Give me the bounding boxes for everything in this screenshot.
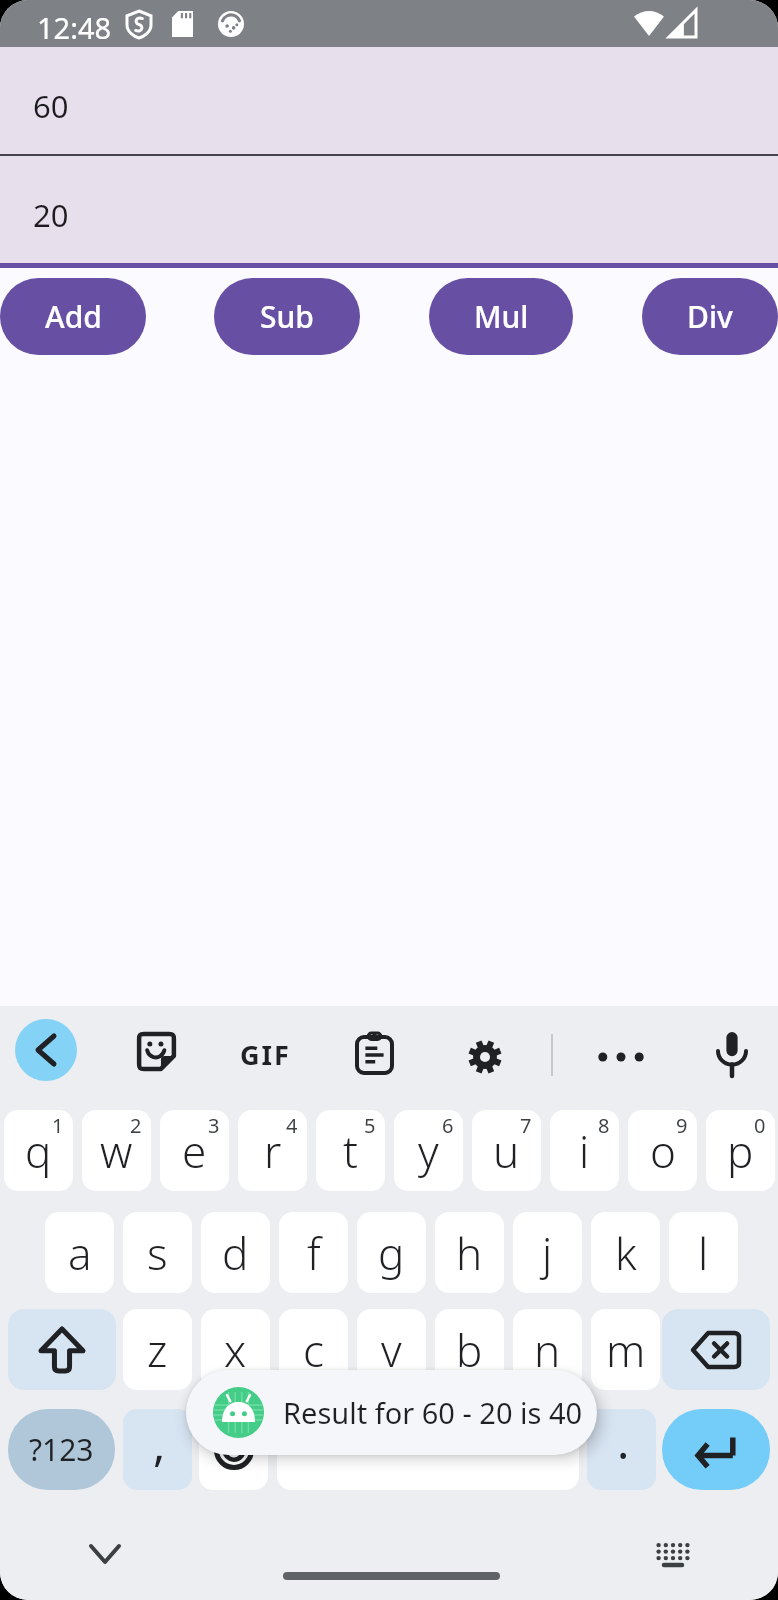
button[interactable]: g xyxy=(357,1212,426,1293)
button[interactable]: q xyxy=(4,1110,73,1191)
button[interactable]: n xyxy=(513,1309,582,1390)
staticText: 5 xyxy=(364,1112,376,1139)
button[interactable]: . xyxy=(587,1409,656,1490)
button[interactable]: e xyxy=(160,1110,229,1191)
button[interactable] xyxy=(357,1033,392,1073)
staticText: h xyxy=(456,1223,483,1283)
button[interactable]: k xyxy=(591,1212,660,1293)
button[interactable]: r xyxy=(238,1110,307,1191)
staticText: w xyxy=(100,1121,133,1181)
staticText: 9 xyxy=(676,1112,688,1139)
button[interactable]: b xyxy=(435,1309,504,1390)
staticText: u xyxy=(493,1121,520,1181)
staticText: 0 xyxy=(754,1112,766,1139)
staticText: . xyxy=(617,1410,630,1473)
staticText: p xyxy=(727,1121,754,1181)
button[interactable] xyxy=(91,1546,119,1562)
staticText: 2 xyxy=(130,1112,142,1139)
staticText: a xyxy=(68,1223,92,1283)
staticText: v xyxy=(381,1320,402,1380)
staticText: q xyxy=(25,1121,52,1181)
staticText: 12:48 xyxy=(37,8,112,47)
staticText: 8 xyxy=(598,1112,610,1139)
button[interactable]: y xyxy=(394,1110,463,1191)
staticText: 3 xyxy=(208,1112,220,1139)
button[interactable]: t xyxy=(316,1110,385,1191)
button[interactable] xyxy=(662,1409,770,1490)
button[interactable]: o xyxy=(628,1110,697,1191)
button[interactable]: z xyxy=(123,1309,192,1390)
staticText: , xyxy=(153,1412,166,1475)
button[interactable]: l xyxy=(669,1212,738,1293)
staticText: l xyxy=(698,1223,709,1283)
staticText: 6 xyxy=(442,1112,454,1139)
button[interactable]: Sub xyxy=(214,278,360,355)
staticText: j xyxy=(542,1223,553,1283)
staticText: Result for 60 - 20 is 40 xyxy=(283,1393,583,1432)
button[interactable]: d xyxy=(201,1212,270,1293)
button[interactable] xyxy=(199,1409,268,1490)
staticText: z xyxy=(147,1320,168,1380)
staticText: ?123 xyxy=(29,1429,94,1470)
button[interactable]: v xyxy=(357,1309,426,1390)
staticText: t xyxy=(343,1121,358,1181)
button[interactable] xyxy=(467,1039,503,1075)
staticText: i xyxy=(579,1121,590,1181)
button[interactable] xyxy=(277,1409,579,1490)
button[interactable]: w xyxy=(82,1110,151,1191)
button[interactable]: h xyxy=(435,1212,504,1293)
button[interactable]: c xyxy=(279,1309,348,1390)
staticText: m xyxy=(606,1320,646,1380)
staticText: GIF xyxy=(240,1036,291,1073)
button[interactable] xyxy=(138,1033,175,1070)
staticText: r xyxy=(264,1121,282,1181)
staticText: Div xyxy=(687,296,733,337)
staticText: 1 xyxy=(52,1112,64,1139)
button[interactable]: Div xyxy=(642,278,778,355)
staticText: n xyxy=(534,1320,561,1380)
button[interactable]: m xyxy=(591,1309,660,1390)
button[interactable]: u xyxy=(472,1110,541,1191)
button[interactable]: f xyxy=(279,1212,348,1293)
staticText: 7 xyxy=(520,1112,532,1139)
staticText: e xyxy=(182,1121,207,1181)
button[interactable]: a xyxy=(45,1212,114,1293)
button[interactable] xyxy=(15,1019,77,1081)
staticText: Sub xyxy=(260,296,314,337)
button[interactable]: ?123 xyxy=(8,1409,115,1490)
staticText: c xyxy=(303,1320,324,1380)
staticText: Add xyxy=(45,296,102,337)
button[interactable]: x xyxy=(201,1309,270,1390)
staticText: y xyxy=(418,1121,439,1181)
staticText: f xyxy=(307,1223,321,1283)
staticText: o xyxy=(650,1121,676,1181)
staticText: 4 xyxy=(286,1112,298,1139)
staticText: 20 xyxy=(33,194,69,236)
staticText: s xyxy=(147,1223,168,1283)
button[interactable] xyxy=(662,1309,770,1390)
button[interactable] xyxy=(8,1309,116,1390)
button[interactable]: p xyxy=(706,1110,775,1191)
button[interactable]: i xyxy=(550,1110,619,1191)
button[interactable]: , xyxy=(123,1409,192,1490)
button[interactable] xyxy=(655,1542,691,1568)
button[interactable] xyxy=(595,1046,647,1068)
button[interactable]: Add xyxy=(0,278,146,355)
button[interactable]: Mul xyxy=(429,278,573,355)
button[interactable] xyxy=(718,1032,746,1076)
staticText: 60 xyxy=(33,85,69,127)
staticText: x xyxy=(224,1320,247,1380)
staticText: d xyxy=(222,1223,249,1283)
staticText: g xyxy=(378,1223,405,1283)
button[interactable]: j xyxy=(513,1212,582,1293)
button[interactable]: GIF xyxy=(230,1032,300,1076)
staticText: b xyxy=(456,1320,483,1380)
button[interactable]: s xyxy=(123,1212,192,1293)
staticText: Mul xyxy=(474,296,529,337)
staticText: k xyxy=(615,1223,637,1283)
